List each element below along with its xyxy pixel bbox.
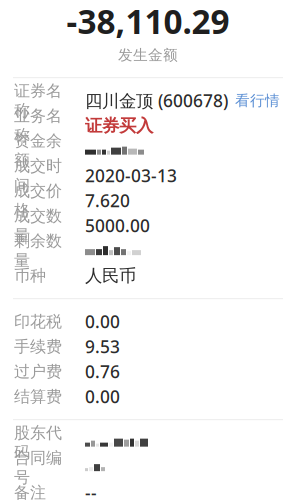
staticText: 0.00 (85, 310, 120, 333)
staticText: 业务名称 (14, 106, 62, 145)
staticText: -- (85, 481, 97, 500)
staticText: -38,110.29 (66, 0, 229, 43)
button[interactable]: 看行情 (235, 92, 280, 110)
staticText: 9.53 (85, 335, 120, 358)
staticText: 币种 (14, 266, 46, 285)
staticText: 发生金额 (118, 46, 178, 64)
staticText: 过户费 (14, 362, 62, 381)
staticText: 7.620 (85, 189, 130, 212)
staticText: 成交价格 (14, 181, 62, 220)
staticText: 看行情 (235, 92, 280, 110)
staticText: 2020-03-13 (85, 164, 177, 187)
staticText: 成交数量 (14, 206, 62, 245)
staticText: 印花税 (14, 312, 62, 331)
staticText: 股东代码 (14, 423, 62, 462)
staticText: 成交时间 (14, 156, 62, 195)
staticText: 0.76 (85, 360, 120, 383)
staticText: 0.00 (85, 385, 120, 408)
staticText: 备注 (14, 483, 46, 500)
staticText: 证券名称 (14, 81, 62, 120)
staticText: 资金余额 (14, 131, 62, 170)
staticText: 证券买入 (85, 115, 153, 136)
staticText: 手续费 (14, 337, 62, 356)
staticText: 结算费 (14, 387, 62, 406)
staticText: 5000.00 (85, 214, 150, 237)
staticText: 四川金顶 (600678) (85, 89, 228, 112)
staticText: 合同编号 (14, 448, 62, 487)
staticText: 剩余数量 (14, 231, 62, 270)
staticText: 人民币 (85, 265, 136, 286)
